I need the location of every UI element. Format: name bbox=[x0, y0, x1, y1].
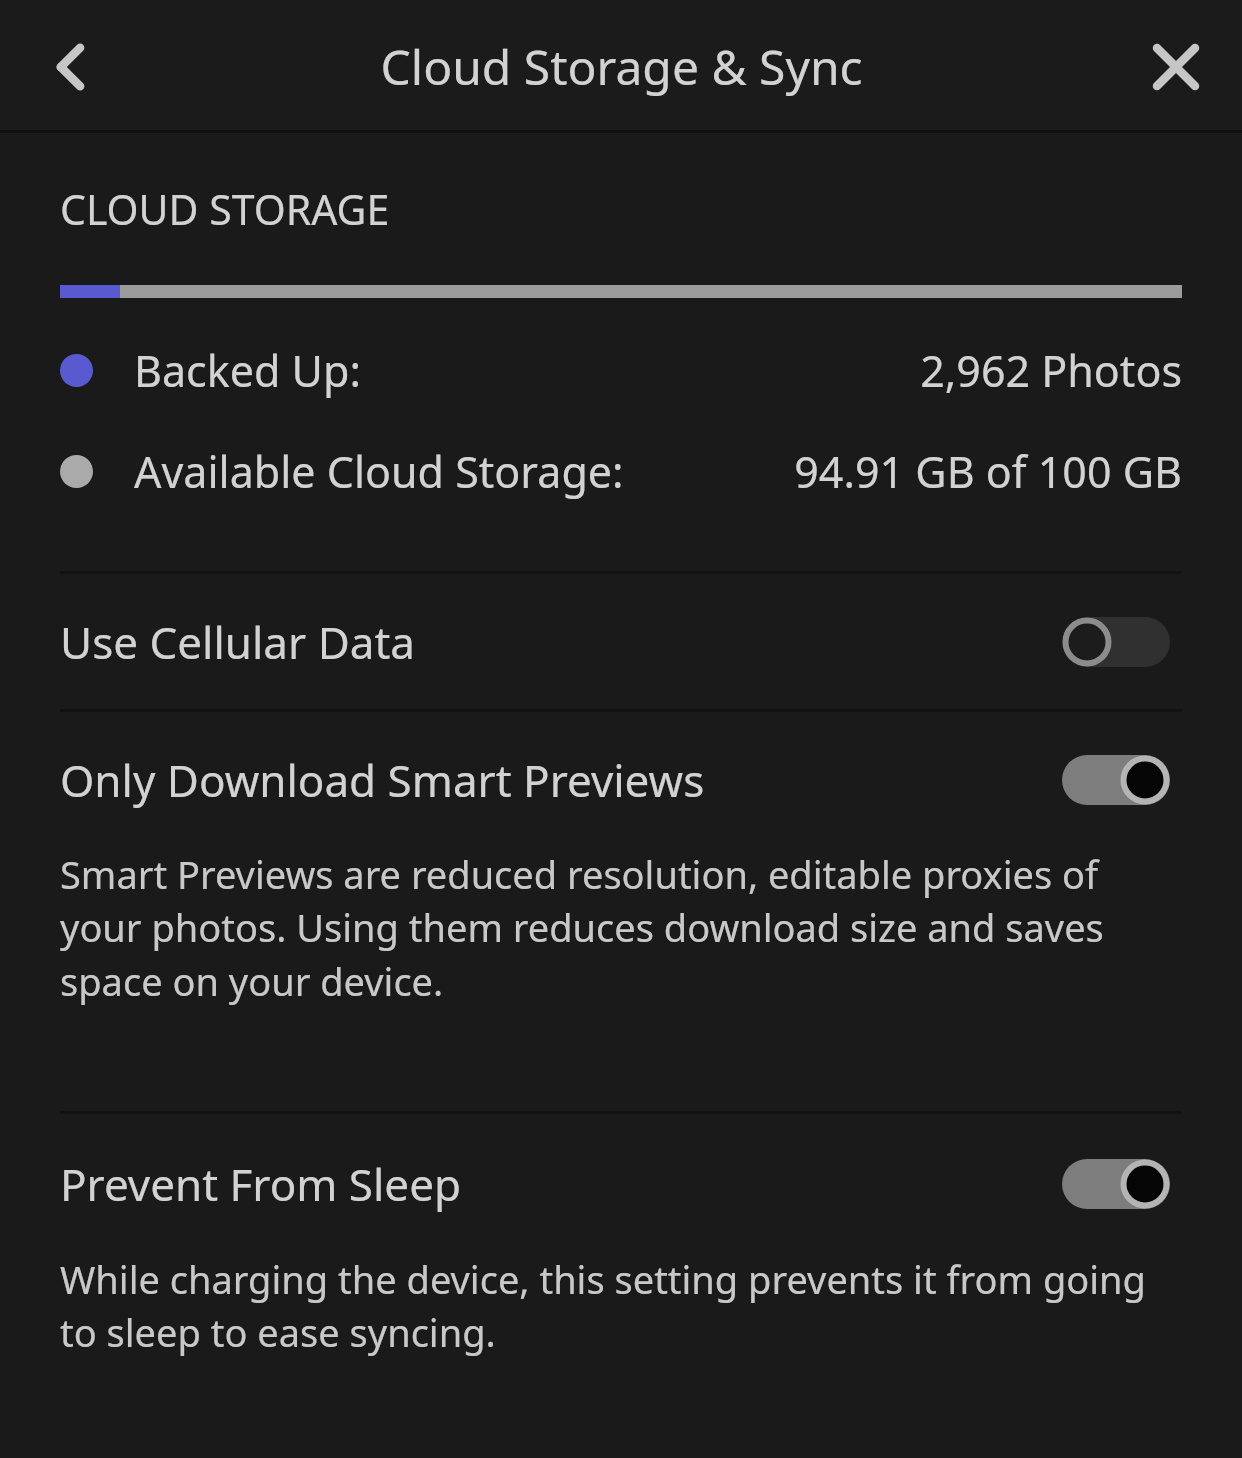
staticText: Backed Up: bbox=[134, 341, 361, 400]
staticText: Cloud Storage & Sync bbox=[380, 34, 863, 99]
button[interactable]: Off bbox=[1062, 617, 1170, 667]
staticText: Only Download Smart Previews bbox=[60, 750, 705, 810]
staticText: While charging the device, this setting … bbox=[60, 1253, 1162, 1359]
staticText: Available Cloud Storage: bbox=[134, 442, 624, 501]
button[interactable]: On bbox=[1062, 1159, 1170, 1209]
button[interactable]: Back bbox=[20, 17, 120, 117]
staticText: Prevent From Sleep bbox=[60, 1154, 462, 1214]
staticText: Use Cellular Data bbox=[60, 612, 416, 672]
staticText: CLOUD STORAGE bbox=[60, 181, 390, 237]
staticText: 2,962 Photos bbox=[920, 341, 1182, 400]
button[interactable]: Only Download Smart Previews bbox=[0, 712, 1242, 848]
staticText: 94.91 GB of 100 GB bbox=[794, 442, 1182, 501]
button[interactable]: Use Cellular Data bbox=[0, 574, 1242, 709]
button[interactable]: Close bbox=[1128, 19, 1224, 115]
button[interactable]: On bbox=[1062, 755, 1170, 805]
button[interactable]: Prevent From Sleep bbox=[0, 1114, 1242, 1253]
staticText: Smart Previews are reduced resolution, e… bbox=[60, 848, 1142, 1008]
